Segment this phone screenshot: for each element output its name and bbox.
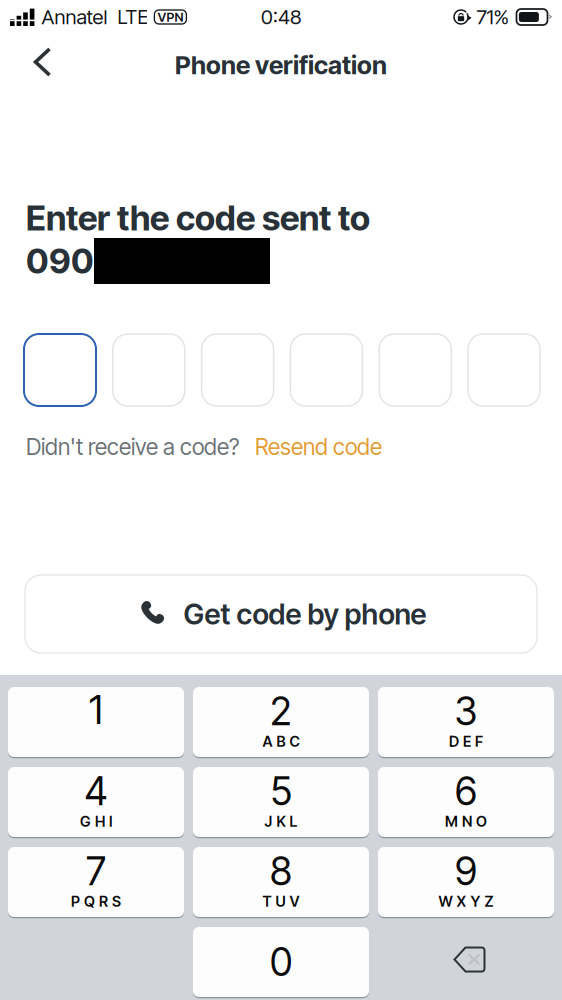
button[interactable]: 1 <box>8 687 184 757</box>
staticText: 8 <box>270 848 292 894</box>
button[interactable]: Code digit 1 <box>24 334 96 406</box>
button[interactable]: Code digit 4 <box>290 334 362 406</box>
staticText: Didn't receive a code? <box>26 433 239 460</box>
button[interactable]: 9 <box>378 847 554 917</box>
button[interactable]: 5 <box>193 767 369 837</box>
button[interactable]: 3 <box>378 687 554 757</box>
staticText: 7 <box>86 848 106 894</box>
staticText: 0:48 <box>261 5 301 29</box>
staticText: DEF <box>449 732 483 750</box>
staticText: MNO <box>445 812 487 830</box>
staticText: TUV <box>262 892 299 910</box>
button[interactable]: Resend code <box>239 433 382 460</box>
button[interactable]: Delete <box>378 927 554 997</box>
staticText: 2 <box>270 688 292 734</box>
button[interactable]: Get code by phone <box>25 575 537 653</box>
staticText: Get code by phone <box>183 597 426 631</box>
staticText: WXYZ <box>438 892 493 910</box>
staticText: Annatel <box>41 5 107 29</box>
button[interactable]: Back <box>0 37 66 79</box>
button[interactable]: 0 <box>193 927 369 997</box>
staticText: 9 <box>455 848 477 894</box>
staticText: 4 <box>84 768 107 814</box>
button[interactable]: 6 <box>378 767 554 837</box>
button[interactable]: 2 <box>193 687 369 757</box>
staticText: 5 <box>270 768 291 814</box>
staticText: Enter the code sent to <box>26 197 370 239</box>
staticText: GHI <box>80 812 112 830</box>
button[interactable]: Code digit 5 <box>379 334 451 406</box>
button[interactable]: Code digit 3 <box>202 334 274 406</box>
staticText: 090 <box>26 240 94 282</box>
staticText: PQRS <box>71 892 121 910</box>
staticText: ABC <box>262 732 299 750</box>
staticText: VPN <box>157 9 183 25</box>
staticText: 6 <box>455 768 477 814</box>
button[interactable]: Code digit 2 <box>113 334 185 406</box>
staticText: 71% <box>476 5 509 29</box>
staticText: JKL <box>264 812 297 830</box>
staticText: Resend code <box>255 433 382 460</box>
staticText: 1 <box>89 687 103 733</box>
button[interactable]: Code digit 6 <box>468 334 540 406</box>
button[interactable]: 8 <box>193 847 369 917</box>
button[interactable]: 7 <box>8 847 184 917</box>
staticText: 0 <box>270 939 292 985</box>
button[interactable]: 4 <box>8 767 184 837</box>
staticText: 3 <box>454 688 477 734</box>
staticText: Phone verification <box>175 50 387 80</box>
staticText: LTE <box>117 5 148 29</box>
